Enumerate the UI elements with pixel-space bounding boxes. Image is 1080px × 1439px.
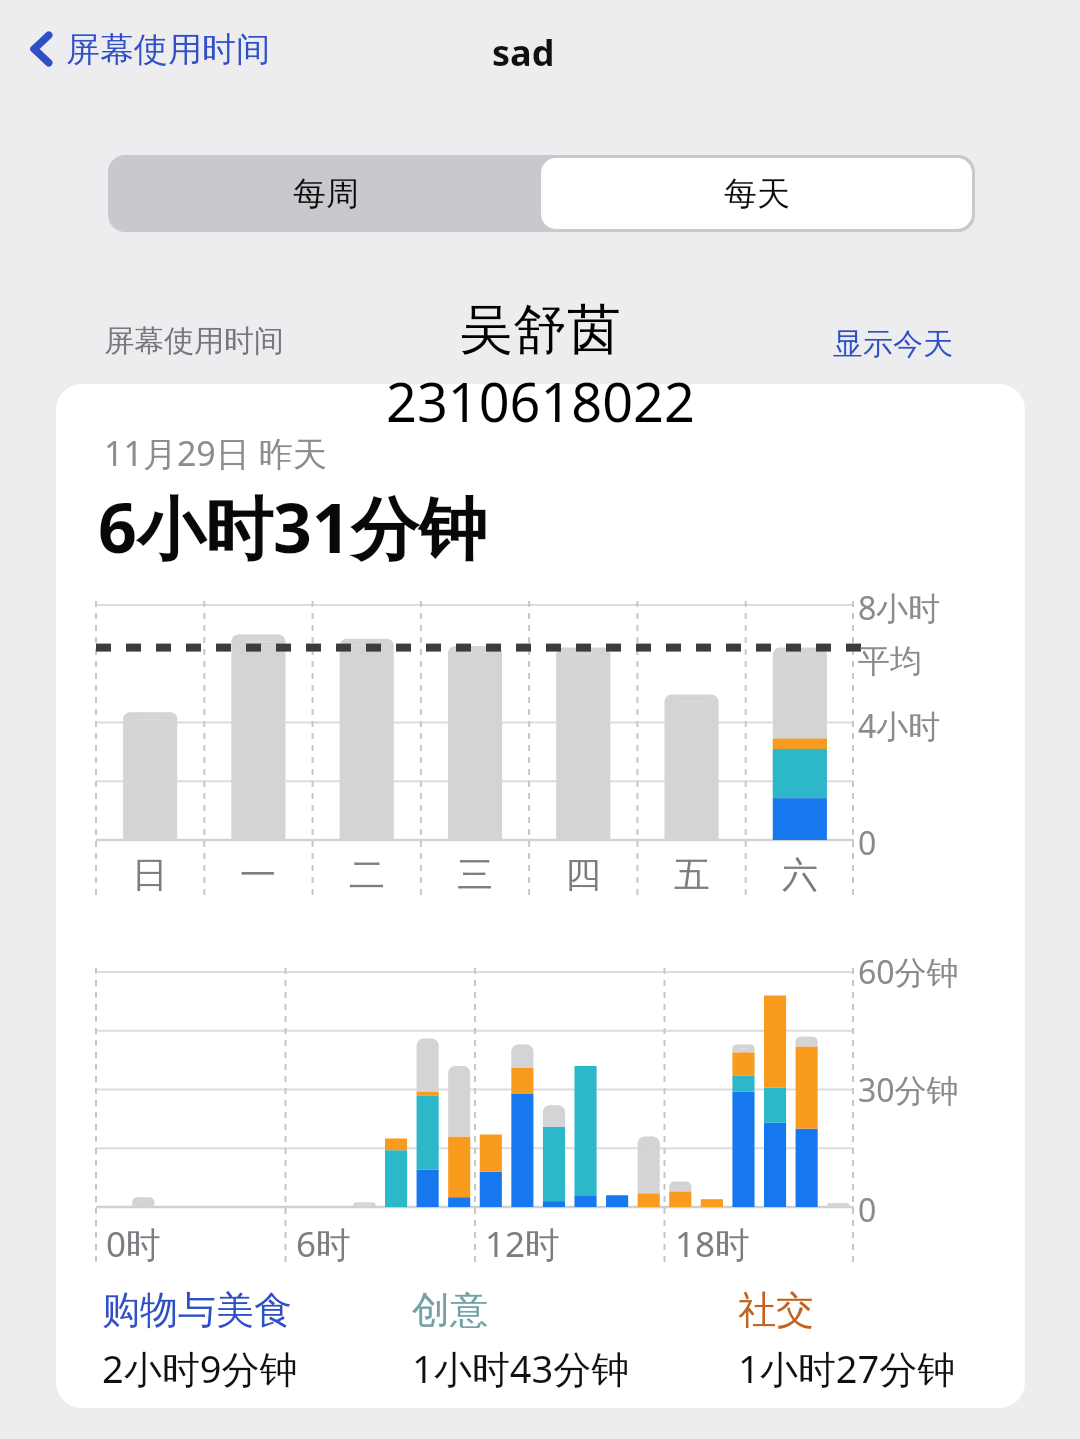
- button[interactable]: Back: [24, 20, 274, 78]
- staticText: 11月29日 昨天: [104, 430, 327, 476]
- staticText: 吴舒茵: [459, 296, 621, 364]
- other: Back: [28, 26, 56, 72]
- staticText: 日: [132, 852, 168, 897]
- button[interactable]: 创意: [412, 1286, 630, 1394]
- staticText: 屏幕使用时间: [66, 28, 270, 71]
- staticText: 0时: [106, 1220, 162, 1268]
- staticText: 屏幕使用时间: [104, 322, 284, 360]
- staticText: 12时: [485, 1220, 561, 1268]
- button[interactable]: 显示今天: [830, 322, 956, 366]
- staticText: 三: [457, 852, 493, 897]
- staticText: 60分钟: [858, 950, 959, 994]
- staticText: 六: [782, 852, 818, 897]
- staticText: 1小时27分钟: [738, 1342, 956, 1394]
- button[interactable]: 每天: [541, 158, 972, 229]
- staticText: 8小时: [858, 586, 941, 630]
- staticText: 平均: [858, 641, 922, 681]
- staticText: 18时: [675, 1220, 751, 1268]
- staticText: 4小时: [858, 704, 941, 748]
- staticText: 2310618022: [386, 364, 695, 438]
- staticText: 每周: [293, 173, 359, 215]
- staticText: 1小时43分钟: [412, 1342, 630, 1394]
- button[interactable]: 每周: [111, 158, 541, 229]
- staticText: 0: [858, 1188, 877, 1232]
- staticText: 每天: [724, 173, 790, 215]
- staticText: 6小时31分钟: [98, 480, 487, 573]
- staticText: 6时: [296, 1220, 352, 1268]
- staticText: 30分钟: [858, 1068, 959, 1112]
- staticText: 一: [240, 852, 276, 897]
- staticText: 创意: [412, 1286, 488, 1334]
- staticText: 0: [858, 821, 877, 865]
- button[interactable]: 社交: [738, 1286, 956, 1394]
- staticText: 2小时9分钟: [102, 1342, 298, 1394]
- staticText: 社交: [738, 1286, 814, 1334]
- staticText: 四: [565, 852, 601, 897]
- staticText: 五: [674, 852, 710, 897]
- staticText: 二: [349, 852, 385, 897]
- staticText: sad: [492, 28, 555, 77]
- button[interactable]: 购物与美食: [102, 1286, 298, 1394]
- staticText: 显示今天: [833, 325, 953, 363]
- staticText: 购物与美食: [102, 1286, 292, 1334]
